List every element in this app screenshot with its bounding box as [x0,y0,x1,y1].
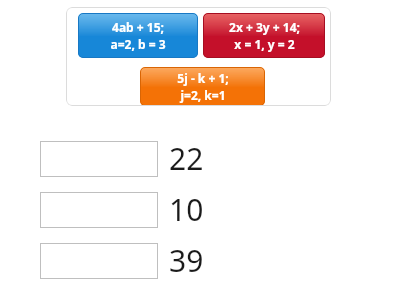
staticText: a=2, b = 3 [110,36,166,52]
button[interactable]: Answer drop target [40,243,158,279]
staticText: 22 [169,138,204,179]
staticText: 4ab + 15; [112,19,164,35]
staticText: 10 [169,189,204,230]
button[interactable]: Answer drop target [40,141,158,177]
button[interactable]: Answer drop target [40,192,158,228]
staticText: j=2, k=1 [180,87,226,103]
staticText: 39 [169,240,204,281]
staticText: 2x + 3y + 14; [229,19,300,35]
staticText: 5j - k + 1; [177,70,229,86]
button[interactable]: 5j - k + 1; [140,67,265,106]
button[interactable]: 4ab + 15; [78,13,198,58]
staticText: x = 1, y = 2 [234,36,295,52]
button[interactable]: 2x + 3y + 14; [203,13,325,58]
